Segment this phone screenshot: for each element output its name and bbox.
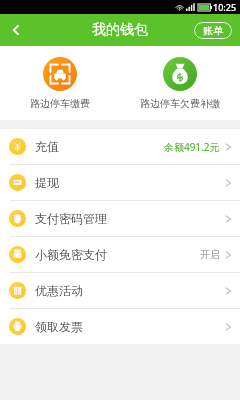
- staticText: 余额491.2元: [164, 140, 220, 154]
- button[interactable]: 账单: [194, 22, 232, 39]
- staticText: 充值: [35, 139, 59, 154]
- staticText: 开启: [200, 248, 220, 261]
- button[interactable]: 路边停车缴费: [0, 46, 120, 120]
- staticText: 10:25: [213, 1, 237, 13]
- button[interactable]: 支付密码管理: [0, 201, 240, 236]
- staticText: 提现: [35, 175, 59, 190]
- staticText: 小额免密支付: [35, 247, 107, 262]
- button[interactable]: 路边停车欠费补缴: [120, 46, 240, 120]
- staticText: 支付密码管理: [35, 211, 107, 226]
- button[interactable]: 优惠活动: [0, 273, 240, 308]
- button[interactable]: 充值: [0, 129, 240, 164]
- button[interactable]: 领取发票: [0, 309, 240, 344]
- staticText: 领取发票: [35, 319, 83, 334]
- staticText: 优惠活动: [35, 283, 83, 298]
- button[interactable]: 提现: [0, 165, 240, 200]
- staticText: 路边停车欠费补缴: [140, 97, 220, 110]
- staticText: 路边停车缴费: [30, 97, 90, 110]
- staticText: 我的钱包: [92, 21, 148, 39]
- staticText: 账单: [203, 24, 223, 37]
- button[interactable]: Back: [0, 14, 32, 46]
- button[interactable]: 小额免密支付: [0, 237, 240, 272]
